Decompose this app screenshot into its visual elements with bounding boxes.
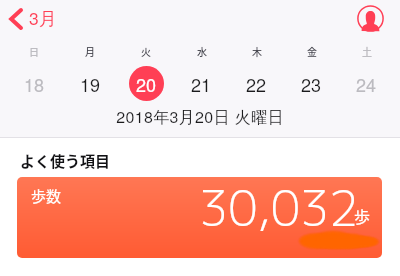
staticText: 24 bbox=[356, 71, 377, 97]
staticText: 水 bbox=[197, 44, 207, 58]
button[interactable]: 3月 bbox=[4, 4, 65, 33]
button[interactable]: 21 bbox=[174, 66, 229, 101]
button[interactable]: 歩数 bbox=[17, 177, 382, 258]
staticText: 3月 bbox=[29, 5, 57, 30]
button[interactable]: 23 bbox=[284, 66, 339, 101]
staticText: 20 bbox=[136, 71, 157, 97]
staticText: 歩数 bbox=[31, 185, 62, 207]
staticText: 22 bbox=[246, 71, 267, 97]
staticText: 18 bbox=[24, 71, 45, 97]
staticText: 21 bbox=[191, 71, 212, 97]
staticText: 金 bbox=[307, 44, 317, 58]
button[interactable]: Profile bbox=[357, 5, 384, 32]
button[interactable]: 19 bbox=[62, 66, 118, 101]
button[interactable]: 20 bbox=[118, 66, 174, 101]
staticText: 30,032 bbox=[199, 177, 359, 241]
button[interactable]: 18 bbox=[6, 66, 62, 101]
staticText: 火 bbox=[141, 44, 151, 58]
staticText: 歩 bbox=[354, 204, 371, 227]
button[interactable]: 24 bbox=[339, 66, 394, 101]
staticText: 土 bbox=[362, 44, 372, 58]
staticText: 月 bbox=[85, 44, 95, 58]
staticText: 日 bbox=[29, 44, 39, 58]
button[interactable]: 22 bbox=[229, 66, 284, 101]
staticText: よく使う項目 bbox=[20, 150, 111, 172]
staticText: 木 bbox=[252, 44, 262, 58]
staticText: 2018年3月20日 火曜日 bbox=[0, 105, 400, 128]
staticText: 19 bbox=[80, 71, 101, 97]
staticText: 23 bbox=[301, 71, 322, 97]
